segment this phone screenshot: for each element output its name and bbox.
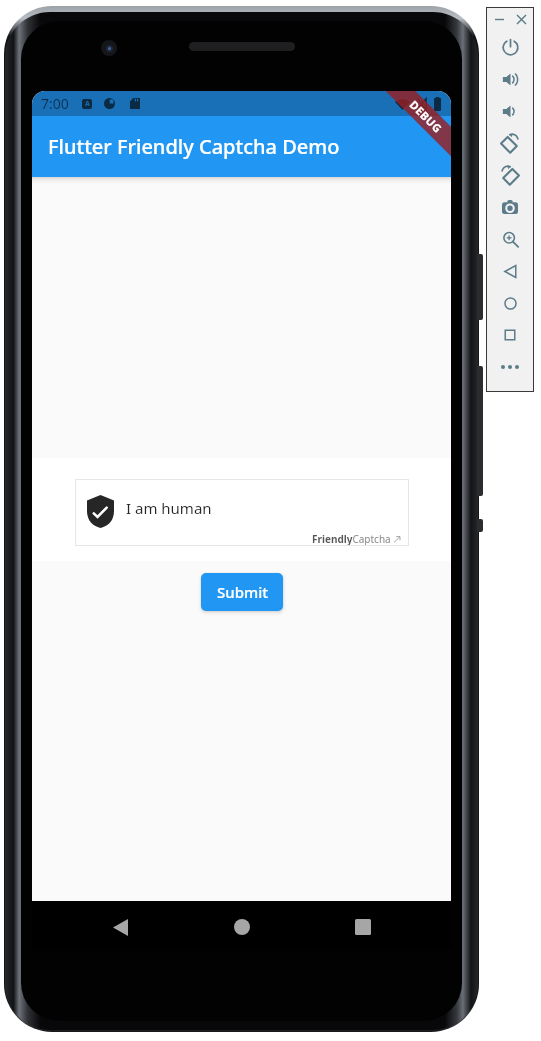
button[interactable]: Minimize bbox=[491, 11, 507, 27]
button[interactable]: Back bbox=[88, 905, 153, 949]
staticText: A bbox=[85, 99, 90, 109]
staticText: DEBUG bbox=[407, 97, 445, 136]
button[interactable]: Rotate right bbox=[486, 159, 534, 191]
staticText: FriendlyCaptcha bbox=[312, 532, 391, 546]
button[interactable]: Back bbox=[486, 255, 534, 287]
button[interactable]: Submit bbox=[201, 573, 283, 611]
button[interactable]: Overview bbox=[486, 319, 534, 351]
staticText: I am human bbox=[126, 498, 212, 518]
staticText: 7:00 bbox=[41, 94, 69, 113]
staticText: Flutter Friendly Captcha Demo bbox=[48, 133, 340, 160]
button[interactable]: Screenshot bbox=[486, 191, 534, 223]
button[interactable]: More bbox=[486, 351, 534, 383]
button[interactable]: Zoom bbox=[486, 223, 534, 255]
button[interactable]: Power bbox=[486, 31, 534, 63]
button[interactable]: Volume down bbox=[486, 95, 534, 127]
staticText: Submit bbox=[217, 582, 268, 602]
button[interactable]: Volume up bbox=[486, 63, 534, 95]
button[interactable]: I am human bbox=[75, 479, 409, 546]
button[interactable]: Home bbox=[209, 905, 274, 949]
button[interactable]: Rotate left bbox=[486, 127, 534, 159]
button[interactable]: Home bbox=[486, 287, 534, 319]
button[interactable]: Recent apps bbox=[330, 905, 395, 949]
button[interactable]: Close bbox=[513, 11, 529, 27]
